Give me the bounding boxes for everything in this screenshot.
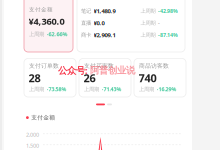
staticText: 阿普创业说: [90, 64, 135, 76]
button[interactable]: 笔记: [77, 0, 185, 52]
staticText: 上周期: [140, 20, 155, 26]
staticText: -87.14%: [158, 31, 178, 39]
button[interactable]: 支付金额: [24, 0, 73, 52]
staticText: ¥0.0: [93, 19, 104, 27]
staticText: 2,000: [26, 131, 39, 138]
staticText: -: [158, 19, 160, 27]
staticText: ¥4,360.0: [28, 15, 64, 27]
button[interactable]: 支付买家数: [79, 58, 131, 97]
staticText: 上周期: [29, 31, 44, 38]
staticText: 支付买家数: [84, 62, 114, 69]
staticText: 支付订单数: [29, 62, 59, 69]
button[interactable]: 支付订单数: [24, 58, 76, 97]
staticText: 上周期: [140, 32, 155, 38]
staticText: 支付金额: [29, 6, 53, 13]
staticText: 笔记: [81, 8, 91, 14]
staticText: -71.43%: [101, 85, 121, 93]
staticText: ¥1,480.9: [93, 7, 115, 15]
staticText: 公众号:: [58, 64, 88, 77]
staticText: 直播: [81, 20, 91, 26]
staticText: 上周期: [29, 86, 44, 92]
staticText: 28: [28, 70, 40, 85]
button[interactable]: 商品访客数: [134, 58, 186, 97]
staticText: -62.66%: [46, 30, 67, 38]
staticText: 740: [138, 70, 156, 85]
staticText: 1,500: [26, 142, 39, 149]
staticText: 26: [83, 70, 95, 85]
staticText: -16.29%: [156, 85, 176, 93]
staticText: 商品访客数: [139, 62, 169, 69]
staticText: -42.98%: [158, 7, 178, 15]
staticText: -73.58%: [46, 85, 66, 93]
staticText: ¥2,909.1: [93, 31, 115, 39]
staticText: 上周期: [84, 86, 99, 92]
staticText: 商卡: [81, 32, 91, 38]
staticText: 支付金额: [31, 114, 55, 121]
staticText: 上周期: [140, 8, 155, 14]
staticText: 上周期: [139, 86, 154, 92]
